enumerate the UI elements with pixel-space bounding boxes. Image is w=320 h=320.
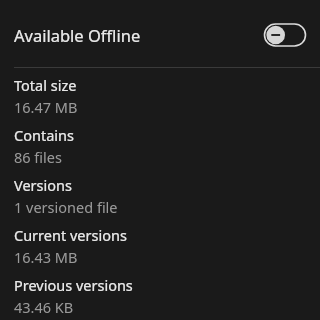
staticText: 43.46 KB — [14, 297, 74, 316]
staticText: 86 files — [14, 147, 62, 166]
button[interactable]: Contains — [0, 124, 320, 166]
button[interactable]: Available Offline toggle, off — [262, 21, 308, 49]
staticText: Contains — [14, 125, 74, 145]
button[interactable]: Versions — [0, 174, 320, 216]
button[interactable]: Previous versions — [0, 274, 320, 316]
button[interactable]: Current versions — [0, 224, 320, 266]
staticText: Available Offline — [14, 24, 141, 46]
button[interactable]: Available Offline — [0, 0, 320, 67]
staticText: Total size — [14, 75, 77, 95]
staticText: Previous versions — [14, 275, 133, 295]
staticText: Current versions — [14, 225, 127, 245]
staticText: 16.43 MB — [14, 247, 78, 266]
button[interactable]: Total size — [0, 74, 320, 116]
staticText: Versions — [14, 175, 72, 195]
staticText: 16.47 MB — [14, 97, 78, 116]
staticText: 1 versioned file — [14, 197, 118, 216]
